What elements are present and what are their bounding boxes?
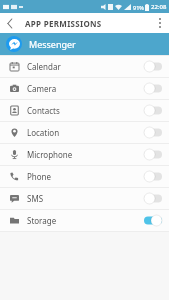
button[interactable]: Camera bbox=[0, 78, 169, 99]
button[interactable]: Toggle off bbox=[144, 105, 162, 116]
staticText: Camera bbox=[27, 83, 57, 94]
staticText: 91% bbox=[133, 4, 144, 11]
staticText: SMS bbox=[27, 193, 44, 204]
button[interactable]: More options bbox=[151, 13, 169, 33]
button[interactable]: Location bbox=[0, 122, 169, 143]
button[interactable]: Toggle off bbox=[144, 171, 162, 182]
staticText: Microphone bbox=[27, 149, 73, 160]
button[interactable]: Contacts bbox=[0, 100, 169, 121]
button[interactable]: Toggle off bbox=[144, 149, 162, 160]
button[interactable]: Toggle off bbox=[144, 193, 162, 204]
staticText: Contacts bbox=[27, 105, 60, 116]
button[interactable]: Microphone bbox=[0, 144, 169, 165]
button[interactable]: Back bbox=[0, 13, 20, 33]
button[interactable]: Phone bbox=[0, 166, 169, 187]
button[interactable]: Calendar bbox=[0, 56, 169, 77]
button[interactable]: Toggle on bbox=[144, 215, 162, 226]
button[interactable]: Storage bbox=[0, 210, 169, 231]
staticText: APP PERMISSIONS bbox=[25, 18, 102, 29]
button[interactable]: Messenger bbox=[0, 33, 169, 55]
staticText: 22:08 bbox=[151, 3, 167, 11]
staticText: Messenger bbox=[29, 38, 76, 50]
staticText: Location bbox=[27, 127, 60, 138]
button[interactable]: Toggle off bbox=[144, 61, 162, 72]
staticText: Storage bbox=[27, 215, 57, 226]
button[interactable]: SMS bbox=[0, 188, 169, 209]
button[interactable]: Toggle off bbox=[144, 83, 162, 94]
staticText: Phone bbox=[27, 171, 52, 182]
button[interactable]: Toggle off bbox=[144, 127, 162, 138]
staticText: Calendar bbox=[27, 61, 61, 72]
